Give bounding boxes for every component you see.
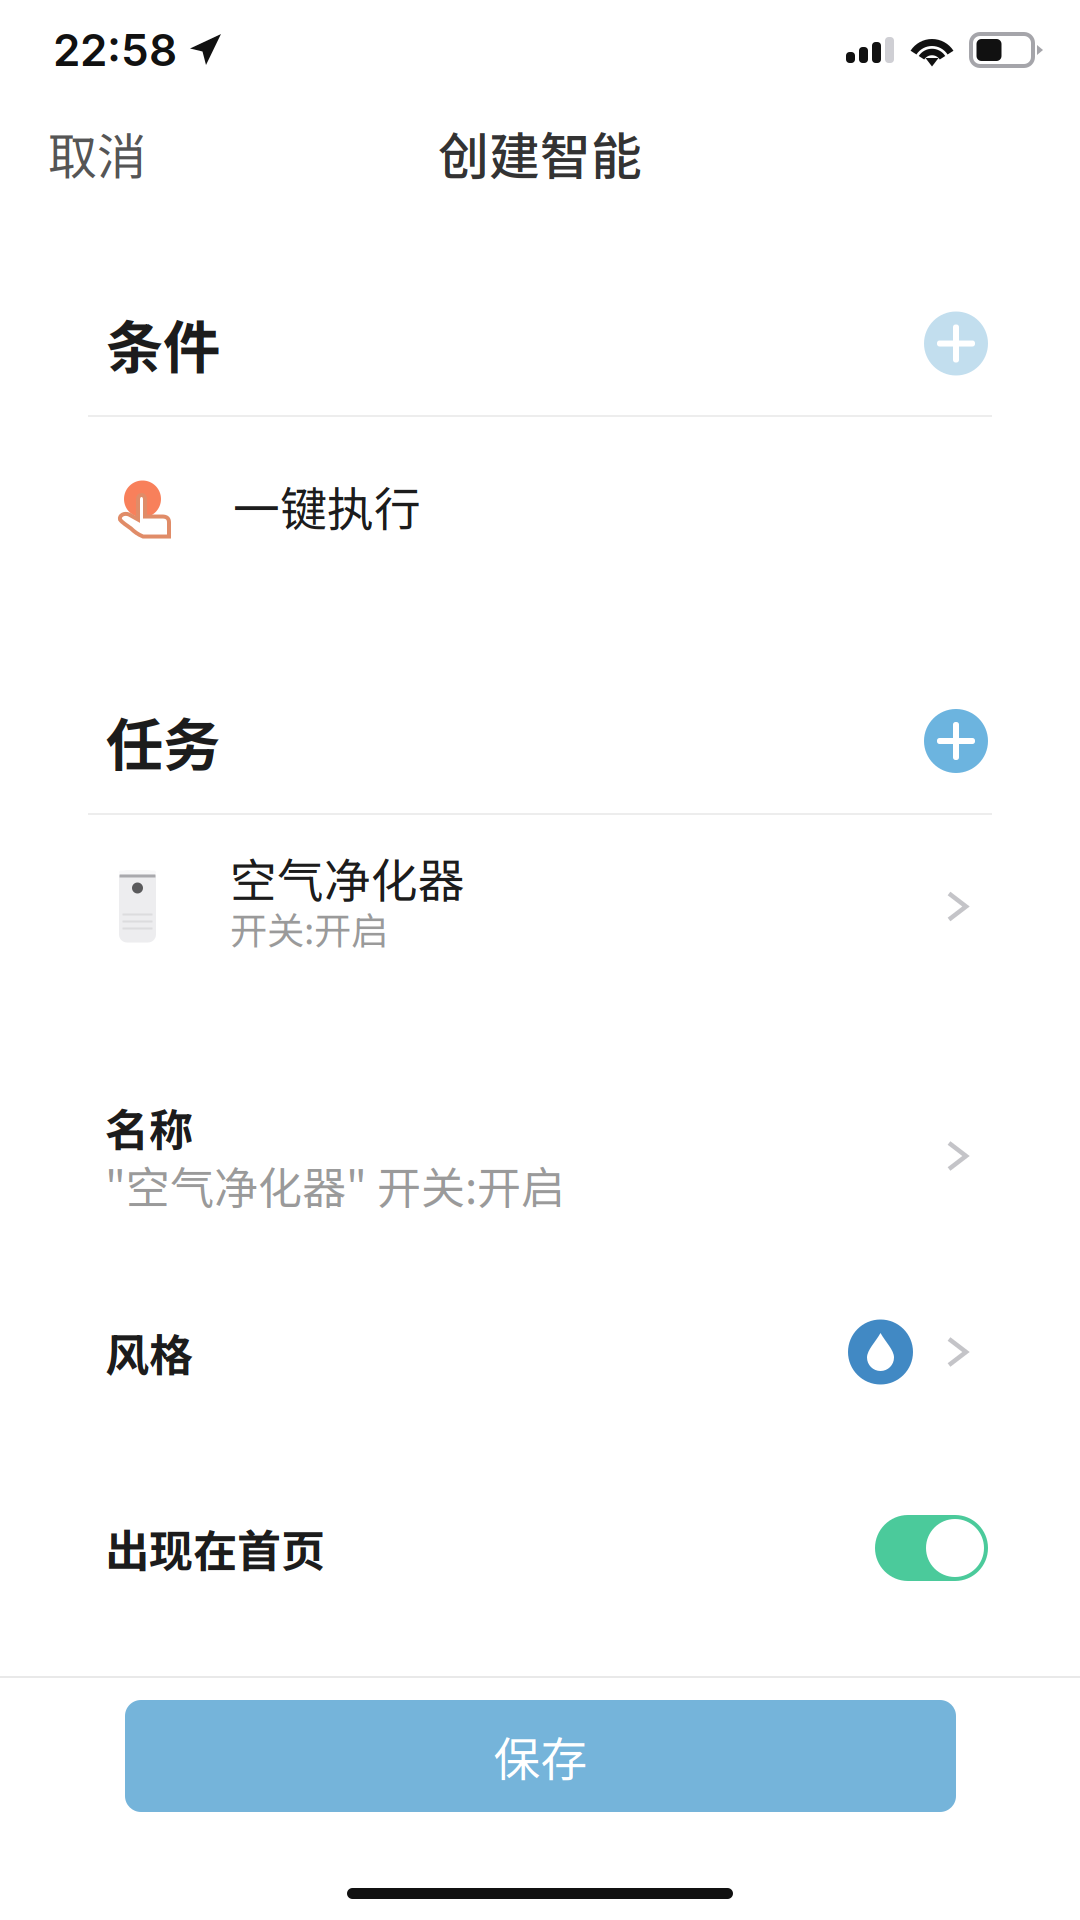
button[interactable]: Show on home page bbox=[875, 1515, 988, 1581]
button[interactable]: 空气净化器 bbox=[0, 815, 1080, 998]
staticText: 风格 bbox=[105, 1320, 193, 1384]
staticText: 条件 bbox=[106, 302, 220, 385]
staticText: 创建智能 bbox=[438, 116, 642, 190]
staticText: 开关:开启 bbox=[230, 901, 388, 955]
staticText: "空气净化器" 开关:开启 bbox=[105, 1153, 565, 1217]
staticText: 一键执行 bbox=[233, 472, 421, 540]
staticText: 空气净化器 bbox=[230, 844, 465, 911]
button[interactable]: 一键执行 bbox=[0, 417, 1080, 595]
staticText: 名称 bbox=[105, 1095, 193, 1159]
staticText: 任务 bbox=[106, 699, 220, 782]
button[interactable]: Add bbox=[924, 709, 988, 773]
button[interactable]: 风格 bbox=[0, 1290, 1080, 1414]
staticText: 保存 bbox=[493, 1722, 587, 1790]
staticText: 出现在首页 bbox=[105, 1516, 325, 1580]
button[interactable]: 保存 bbox=[125, 1700, 956, 1812]
staticText: 取消 bbox=[48, 117, 146, 189]
button[interactable]: 名称 bbox=[0, 1070, 1080, 1242]
staticText: 22:58 bbox=[53, 23, 177, 77]
button[interactable]: Add bbox=[924, 311, 988, 375]
button[interactable]: 取消 bbox=[0, 100, 194, 206]
